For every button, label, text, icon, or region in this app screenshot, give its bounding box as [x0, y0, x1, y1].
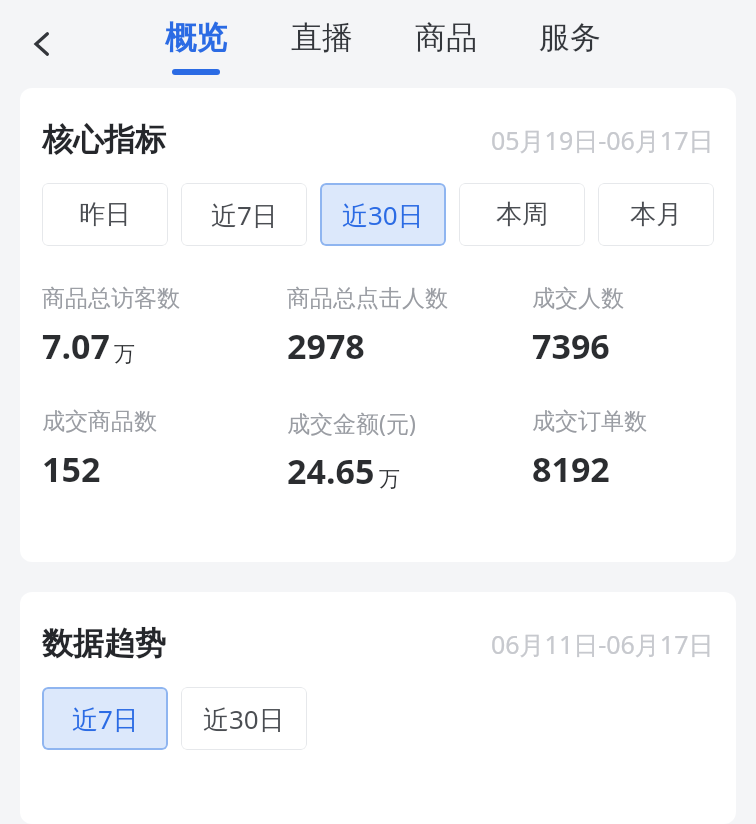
staticText: 本周: [496, 198, 548, 231]
button[interactable]: 近30日: [320, 183, 446, 246]
staticText: 直播: [291, 18, 353, 57]
button[interactable]: 本月: [598, 183, 714, 246]
staticText: 7.07: [42, 323, 110, 369]
staticText: 核心指标: [42, 120, 166, 159]
staticText: 万: [379, 466, 400, 492]
staticText: 近7日: [211, 197, 278, 233]
staticText: 成交人数: [532, 284, 624, 313]
staticText: 24.65: [287, 448, 375, 494]
staticText: 152: [42, 446, 101, 492]
staticText: 服务: [539, 18, 601, 57]
button[interactable]: 本周: [459, 183, 585, 246]
staticText: 成交商品数: [42, 407, 157, 436]
button[interactable]: 服务: [508, 0, 632, 88]
staticText: 概览: [165, 18, 227, 57]
staticText: 06月11日-06月17日: [491, 627, 714, 661]
button[interactable]: 近7日: [181, 183, 307, 246]
staticText: 商品总点击人数: [287, 284, 448, 313]
staticText: 2978: [287, 323, 365, 369]
staticText: 近7日: [72, 701, 139, 737]
button[interactable]: 近7日: [42, 687, 168, 750]
staticText: 本月: [630, 198, 682, 231]
staticText: 数据趋势: [42, 624, 166, 663]
staticText: 商品总访客数: [42, 284, 180, 313]
button[interactable]: Back: [14, 16, 70, 72]
button[interactable]: 商品: [384, 0, 508, 88]
staticText: 7396: [532, 323, 610, 369]
staticText: 近30日: [203, 701, 285, 737]
staticText: 8192: [532, 446, 610, 492]
button[interactable]: 昨日: [42, 183, 168, 246]
staticText: 05月19日-06月17日: [491, 123, 714, 157]
staticText: 近30日: [342, 197, 424, 233]
button[interactable]: 概览: [132, 0, 260, 88]
staticText: 成交金额(元): [287, 407, 416, 438]
staticText: 万: [114, 341, 135, 367]
staticText: 昨日: [79, 198, 131, 231]
button[interactable]: 直播: [260, 0, 384, 88]
staticText: 商品: [415, 18, 477, 57]
button[interactable]: 近30日: [181, 687, 307, 750]
staticText: 成交订单数: [532, 407, 647, 436]
